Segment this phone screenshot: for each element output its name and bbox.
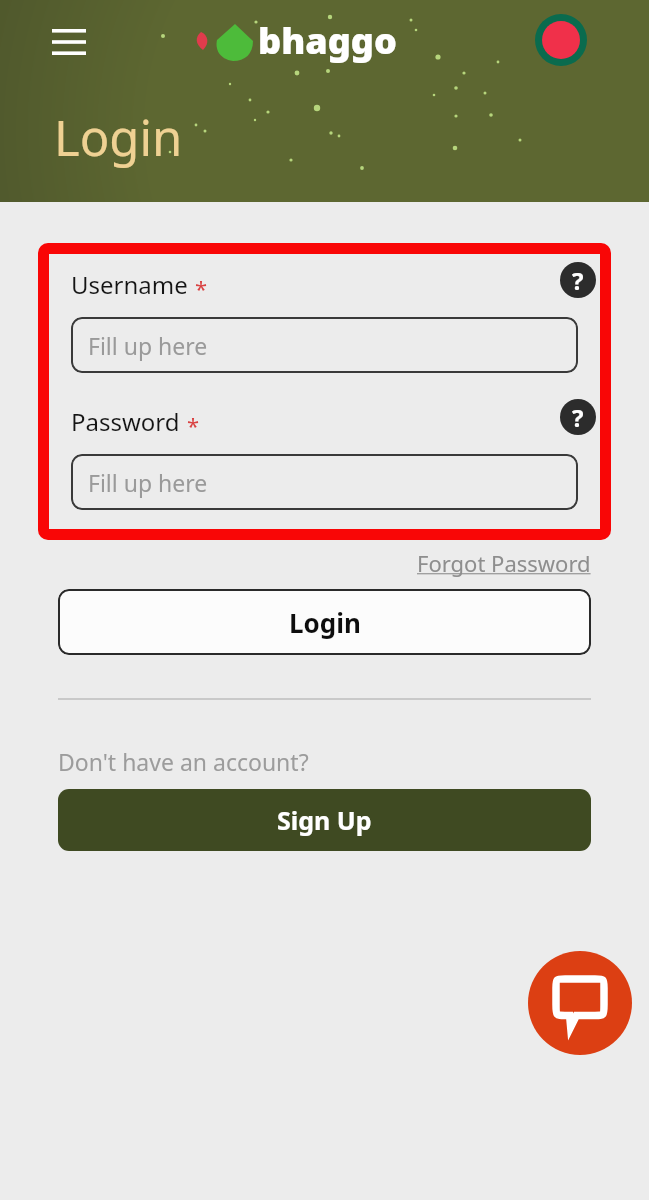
button[interactable]: Forgot Password xyxy=(415,546,593,580)
staticText: Forgot Password xyxy=(417,548,591,578)
button[interactable]: Help for Password xyxy=(560,399,596,435)
staticText: Password xyxy=(71,405,180,438)
staticText: Sign Up xyxy=(277,803,372,837)
staticText: Login xyxy=(289,605,361,640)
button[interactable]: Login xyxy=(58,589,591,655)
button[interactable]: Fill up here xyxy=(71,454,578,510)
button[interactable]: bhaggo xyxy=(191,16,397,65)
button[interactable]: Fill up here xyxy=(71,317,578,373)
button[interactable]: Language: Bangladesh xyxy=(535,14,587,66)
staticText: Login xyxy=(54,104,183,171)
staticText: * xyxy=(187,410,200,440)
staticText: Don't have an account? xyxy=(58,746,309,777)
staticText: Fill up here xyxy=(88,330,208,361)
button[interactable]: Help for Username xyxy=(560,262,596,298)
staticText: ? xyxy=(572,401,584,434)
button[interactable]: Sign Up xyxy=(58,789,591,851)
button[interactable]: Open chat support xyxy=(528,951,632,1055)
staticText: Fill up here xyxy=(88,467,208,498)
staticText: ? xyxy=(572,264,584,297)
button[interactable]: Menu xyxy=(50,24,87,60)
staticText: Username xyxy=(71,268,188,301)
staticText: * xyxy=(195,273,208,303)
staticText: bhaggo xyxy=(258,16,397,65)
